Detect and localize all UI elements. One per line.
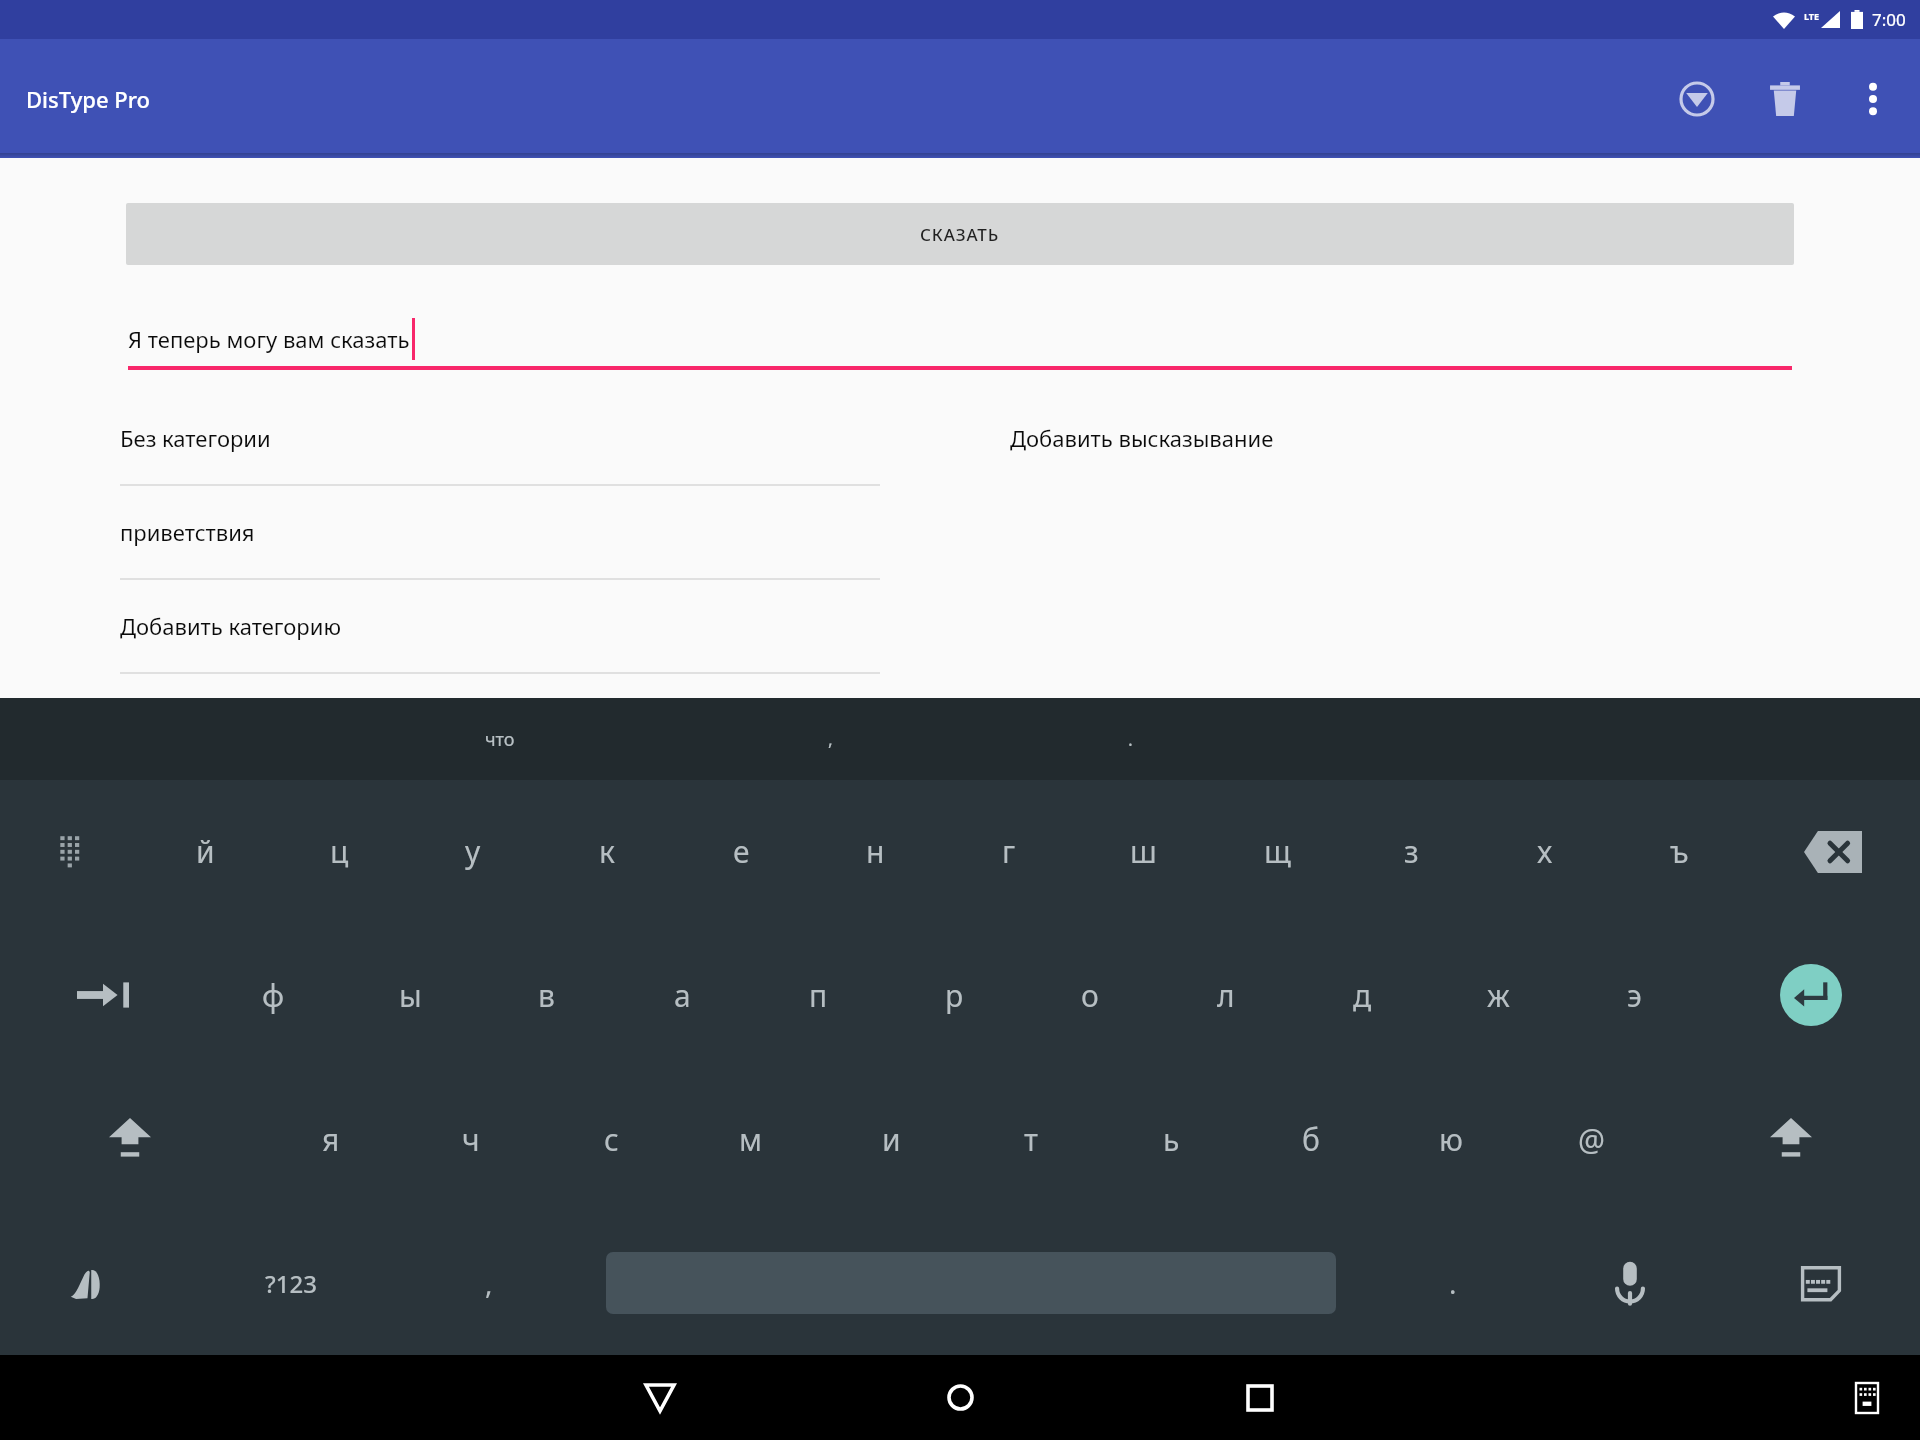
staticText: Без категории	[120, 423, 271, 453]
button[interactable]: у	[406, 780, 540, 923]
staticText: и	[882, 1119, 901, 1160]
button[interactable]: Symbols	[177, 1211, 404, 1355]
button[interactable]: Numbers	[0, 780, 139, 923]
button[interactable]: е	[674, 780, 808, 923]
staticText: х	[1537, 831, 1553, 872]
staticText: р	[945, 975, 964, 1016]
button[interactable]: ъ	[1612, 780, 1746, 923]
button[interactable]: Я теперь могу вам сказать	[128, 308, 1792, 370]
staticText: ц	[330, 831, 349, 872]
staticText: Добавить категорию	[120, 611, 341, 641]
button[interactable]: й	[139, 780, 272, 923]
button[interactable]: Без категории	[120, 392, 880, 486]
button[interactable]: Shift	[0, 1067, 260, 1211]
staticText: ь	[1163, 1119, 1180, 1160]
button[interactable]: приветствия	[120, 486, 880, 580]
staticText: приветствия	[120, 517, 255, 547]
button[interactable]: х	[1478, 780, 1612, 923]
staticText: о	[1081, 975, 1099, 1016]
button[interactable]: э	[1566, 923, 1702, 1067]
button[interactable]: н	[808, 780, 942, 923]
button[interactable]: ю	[1381, 1067, 1521, 1211]
staticText: DisType Pro	[26, 84, 150, 114]
staticText: э	[1627, 975, 1642, 1016]
button[interactable]: б	[1241, 1067, 1381, 1211]
button[interactable]: к	[540, 780, 674, 923]
staticText: ъ	[1670, 831, 1689, 872]
button[interactable]: ч	[401, 1067, 541, 1211]
button[interactable]: Emoji	[0, 1211, 177, 1355]
staticText: Добавить высказывание	[1010, 423, 1274, 453]
button[interactable]: Voice input	[1538, 1211, 1722, 1355]
staticText: ю	[1439, 1119, 1463, 1160]
button[interactable]: и	[821, 1067, 961, 1211]
button[interactable]: я	[260, 1067, 401, 1211]
button[interactable]: д	[1294, 923, 1430, 1067]
staticText: п	[809, 975, 828, 1016]
button[interactable]: Switch keyboard	[1840, 1355, 1894, 1440]
button[interactable]: Back	[585, 1355, 735, 1440]
staticText: с	[604, 1119, 619, 1160]
button[interactable]: Collapse	[1664, 66, 1730, 132]
button[interactable]: щ	[1210, 780, 1344, 923]
staticText: т	[1024, 1119, 1038, 1160]
staticText: а	[674, 975, 691, 1016]
button[interactable]: м	[681, 1067, 821, 1211]
button[interactable]: ш	[1076, 780, 1210, 923]
button[interactable]: Shift	[1661, 1067, 1920, 1211]
button[interactable]: СКАЗАТЬ	[126, 203, 1794, 265]
staticText: щ	[1264, 831, 1291, 872]
staticText: к	[599, 831, 615, 872]
button[interactable]: р	[886, 923, 1022, 1067]
button[interactable]: Backspace	[1746, 780, 1920, 923]
staticText: б	[1302, 1119, 1320, 1160]
button[interactable]: ж	[1430, 923, 1566, 1067]
button[interactable]: о	[1022, 923, 1158, 1067]
button[interactable]: г	[942, 780, 1076, 923]
button[interactable]: ф	[205, 923, 342, 1067]
button[interactable]: т	[961, 1067, 1101, 1211]
staticText: з	[1404, 831, 1419, 872]
staticText: я	[322, 1119, 340, 1160]
button[interactable]: п	[750, 923, 886, 1067]
staticText: г	[1002, 831, 1016, 872]
button[interactable]: Добавить высказывание	[1010, 392, 1800, 484]
staticText: ф	[262, 975, 285, 1016]
button[interactable]: Tab	[0, 923, 205, 1067]
staticText: LTE	[1804, 10, 1820, 22]
staticText: н	[866, 831, 885, 872]
button[interactable]: в	[478, 923, 614, 1067]
staticText: в	[538, 975, 555, 1016]
button[interactable]: @	[1521, 1067, 1661, 1211]
button[interactable]: л	[1158, 923, 1294, 1067]
staticText: что	[485, 727, 515, 752]
button[interactable]: ь	[1101, 1067, 1241, 1211]
button[interactable]: ц	[272, 780, 406, 923]
staticText: ч	[462, 1119, 480, 1160]
staticText: у	[465, 831, 481, 872]
staticText: ?123	[265, 1267, 317, 1300]
staticText: ,	[485, 1264, 493, 1302]
button[interactable]: Home	[885, 1355, 1035, 1440]
button[interactable]: а	[614, 923, 750, 1067]
button[interactable]: с	[541, 1067, 681, 1211]
button[interactable]: Enter	[1702, 923, 1920, 1067]
staticText: й	[196, 831, 215, 872]
button[interactable]: з	[1344, 780, 1478, 923]
staticText: .	[1128, 727, 1133, 752]
staticText: ш	[1130, 831, 1157, 872]
button[interactable]: Hide keyboard	[1722, 1211, 1920, 1355]
staticText: ж	[1487, 975, 1510, 1016]
button[interactable]: Recent apps	[1185, 1355, 1335, 1440]
staticText: м	[739, 1119, 763, 1160]
button[interactable]: Delete	[1752, 66, 1818, 132]
button[interactable]: Добавить категорию	[120, 580, 880, 674]
button[interactable]: ы	[342, 923, 478, 1067]
button[interactable]: More options	[1840, 66, 1906, 132]
button[interactable]: Comma	[404, 1211, 574, 1355]
button[interactable]: что	[320, 698, 680, 780]
